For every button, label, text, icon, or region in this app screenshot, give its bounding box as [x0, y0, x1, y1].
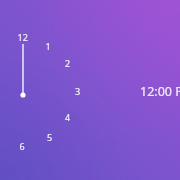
button[interactable]: Watch face: [0, 0, 180, 180]
